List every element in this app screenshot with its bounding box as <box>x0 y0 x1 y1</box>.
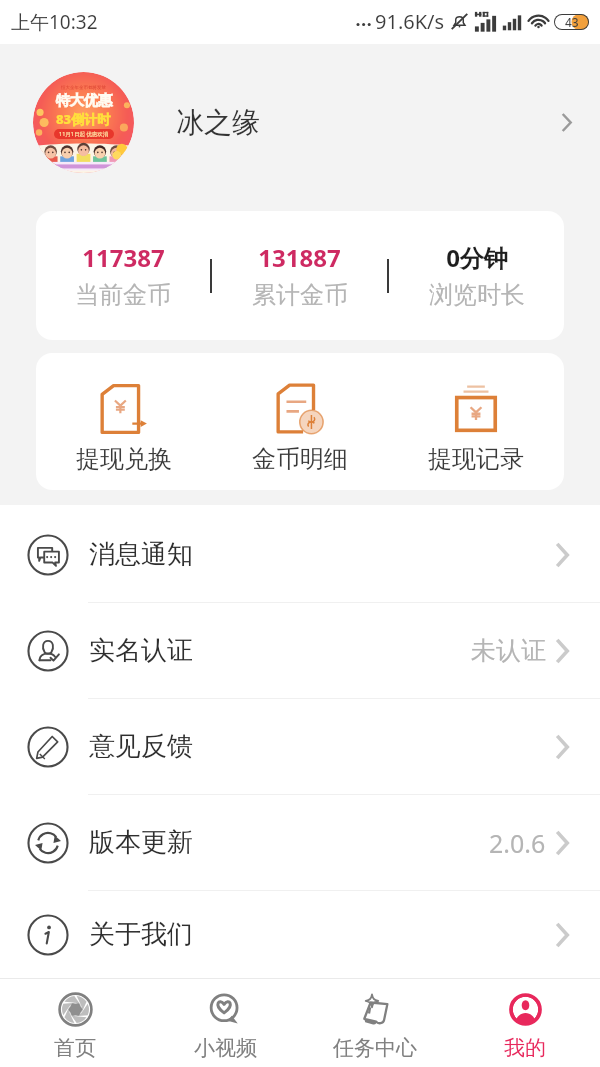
staticText: 浏览时长 <box>429 280 525 310</box>
button[interactable]: 我的 <box>450 979 600 1067</box>
staticText: 91.6K/s <box>375 8 445 35</box>
staticText: 任务中心 <box>333 1035 417 1061</box>
staticText: 金币明细 <box>252 444 348 474</box>
staticText: 43 <box>565 14 579 30</box>
staticText: 提现记录 <box>428 444 524 474</box>
button[interactable]: 恒大全年金币都将发放 <box>0 44 600 201</box>
button[interactable]: 117387 <box>36 211 210 340</box>
staticText: 特大优惠 <box>56 92 112 110</box>
button[interactable]: 小视频 <box>150 979 300 1067</box>
staticText: 11月1日起 优惠欢消 <box>59 130 109 138</box>
staticText: 冰之缘 <box>176 105 260 140</box>
button[interactable]: 131887 <box>212 211 387 340</box>
button[interactable]: 关于我们 <box>0 891 600 978</box>
staticText: 版本更新 <box>89 826 193 859</box>
staticText: 我的 <box>504 1035 546 1061</box>
button[interactable]: 版本更新 <box>0 795 600 890</box>
button[interactable]: 意见反馈 <box>0 699 600 794</box>
staticText: 未认证 <box>471 635 546 666</box>
staticText: 117387 <box>82 241 165 274</box>
staticText: 累计金币 <box>252 280 348 310</box>
button[interactable]: 消息通知 <box>0 507 600 602</box>
staticText: 恒大全年金币都将发放 <box>61 85 106 91</box>
staticText: 上午10:32 <box>11 9 98 35</box>
staticText: 意见反馈 <box>89 730 193 763</box>
staticText: 83倒计时 <box>56 110 111 128</box>
staticText: 小视频 <box>194 1035 257 1061</box>
staticText: 2.0.6 <box>489 826 546 860</box>
button[interactable]: 提现兑换 <box>36 353 212 490</box>
button[interactable]: 金币明细 <box>212 353 388 490</box>
staticText: 提现兑换 <box>76 444 172 474</box>
staticText: 消息通知 <box>89 538 193 571</box>
button[interactable]: 实名认证 <box>0 603 600 698</box>
button[interactable]: 0分钟 <box>389 211 564 340</box>
button[interactable]: 首页 <box>0 979 150 1067</box>
staticText: 131887 <box>258 241 341 274</box>
staticText: 当前金币 <box>75 280 171 310</box>
button[interactable]: 任务中心 <box>300 979 450 1067</box>
staticText: 首页 <box>54 1035 96 1061</box>
button[interactable]: 提现记录 <box>388 353 564 490</box>
staticText: 实名认证 <box>89 634 193 667</box>
staticText: 关于我们 <box>89 918 193 951</box>
staticText: 0分钟 <box>446 241 508 274</box>
